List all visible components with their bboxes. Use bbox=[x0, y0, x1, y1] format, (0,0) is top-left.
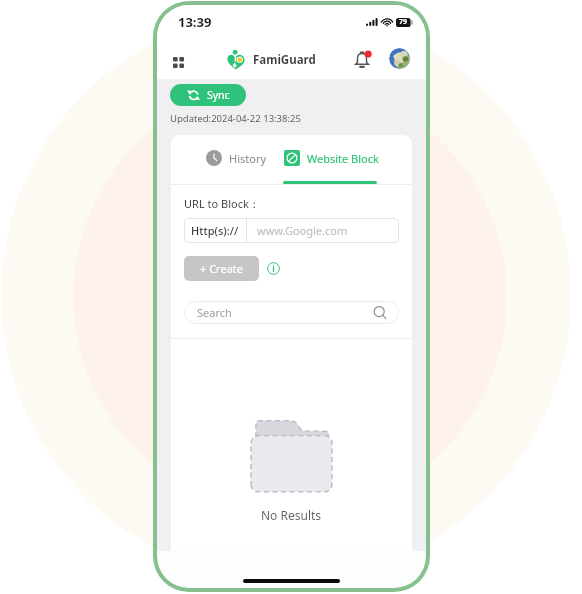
staticText: Sync bbox=[207, 88, 230, 102]
button[interactable]: History bbox=[201, 143, 272, 173]
staticText: URL to Block： bbox=[184, 196, 260, 211]
staticText: FamiGuard bbox=[253, 52, 316, 68]
staticText: 13:39 bbox=[178, 13, 212, 31]
button[interactable]: Profile bbox=[389, 48, 410, 69]
staticText: Http(s):// bbox=[191, 223, 239, 238]
button[interactable]: Menu bbox=[165, 49, 191, 75]
staticText: 79 bbox=[399, 17, 408, 27]
button[interactable]: Http(s):// bbox=[184, 218, 399, 243]
button[interactable]: Sync bbox=[170, 84, 246, 106]
button[interactable]: Notifications bbox=[349, 47, 375, 73]
button[interactable]: Info bbox=[267, 262, 280, 275]
staticText: No Results bbox=[261, 507, 322, 523]
staticText: History bbox=[229, 151, 267, 166]
button[interactable]: Website Block bbox=[279, 143, 384, 173]
staticText: www.Google.com bbox=[257, 223, 348, 238]
staticText: Updated:2024-04-22 13:38:25 bbox=[170, 112, 301, 125]
staticText: Search bbox=[197, 305, 232, 320]
button[interactable]: + Create bbox=[184, 256, 259, 281]
staticText: Website Block bbox=[307, 151, 379, 166]
staticText: + Create bbox=[200, 261, 243, 276]
button[interactable]: Search bbox=[184, 301, 399, 324]
